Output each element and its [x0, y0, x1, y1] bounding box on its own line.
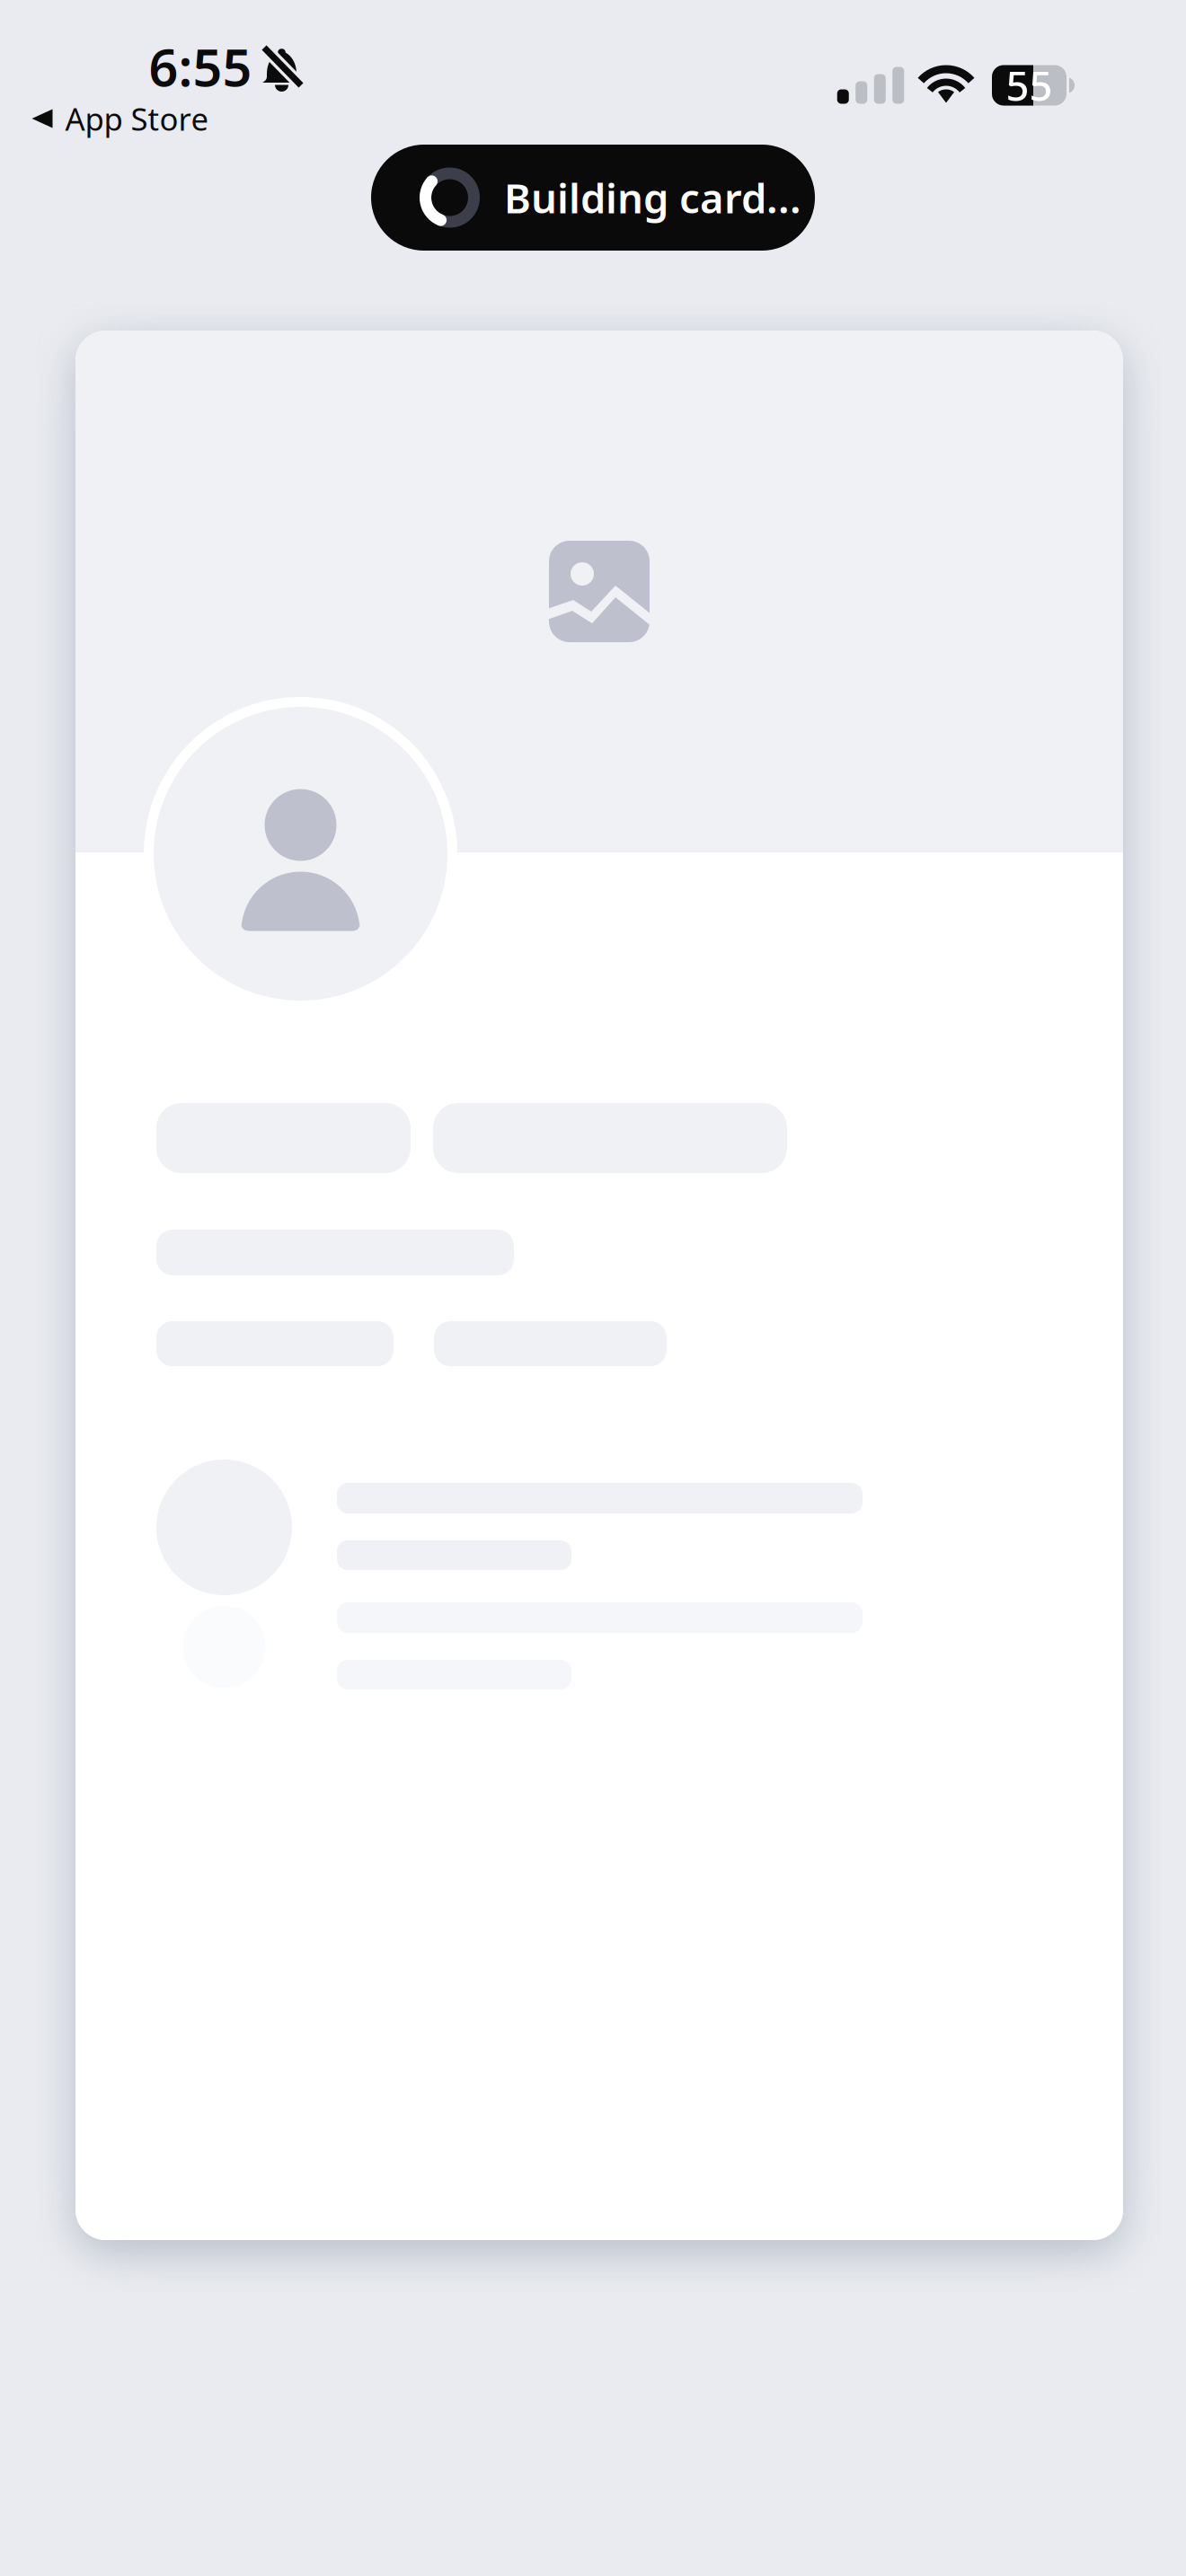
staticText: Building card...: [504, 171, 801, 225]
staticText: App Store: [65, 98, 209, 139]
staticText: 6:55: [149, 32, 252, 101]
button[interactable]: Building card...: [371, 145, 815, 251]
button[interactable]: App Store: [21, 89, 220, 148]
staticText: 55: [1006, 58, 1053, 112]
button[interactable]: Contact card preview: [75, 331, 1123, 2240]
